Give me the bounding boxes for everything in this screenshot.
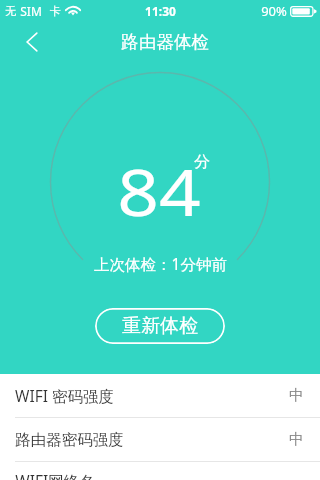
staticText: 分 — [194, 152, 210, 172]
button[interactable]: WIFI网络名 — [0, 462, 320, 480]
button[interactable]: Back — [12, 24, 52, 60]
button[interactable]: 重新体检 — [95, 308, 225, 344]
staticText: 11:30 — [145, 3, 176, 19]
staticText: 无 — [5, 4, 16, 18]
staticText: WIFI 密码强度 — [15, 385, 114, 406]
staticText: 路由器体检 — [121, 31, 209, 53]
staticText: 上次体检：1分钟前 — [94, 253, 227, 274]
staticText: 重新体检 — [122, 314, 198, 338]
staticText: 路由器密码强度 — [15, 430, 124, 450]
staticText: 中 — [289, 386, 304, 405]
staticText: WIFI网络名 — [15, 470, 95, 480]
staticText: 84 — [117, 148, 201, 235]
button[interactable]: 路由器密码强度 — [0, 418, 320, 462]
button[interactable]: WIFI 密码强度 — [0, 374, 320, 418]
staticText: 中 — [289, 430, 304, 449]
staticText: 卡 — [50, 4, 61, 18]
staticText: SIM — [20, 3, 42, 19]
staticText: 90% — [261, 2, 287, 20]
